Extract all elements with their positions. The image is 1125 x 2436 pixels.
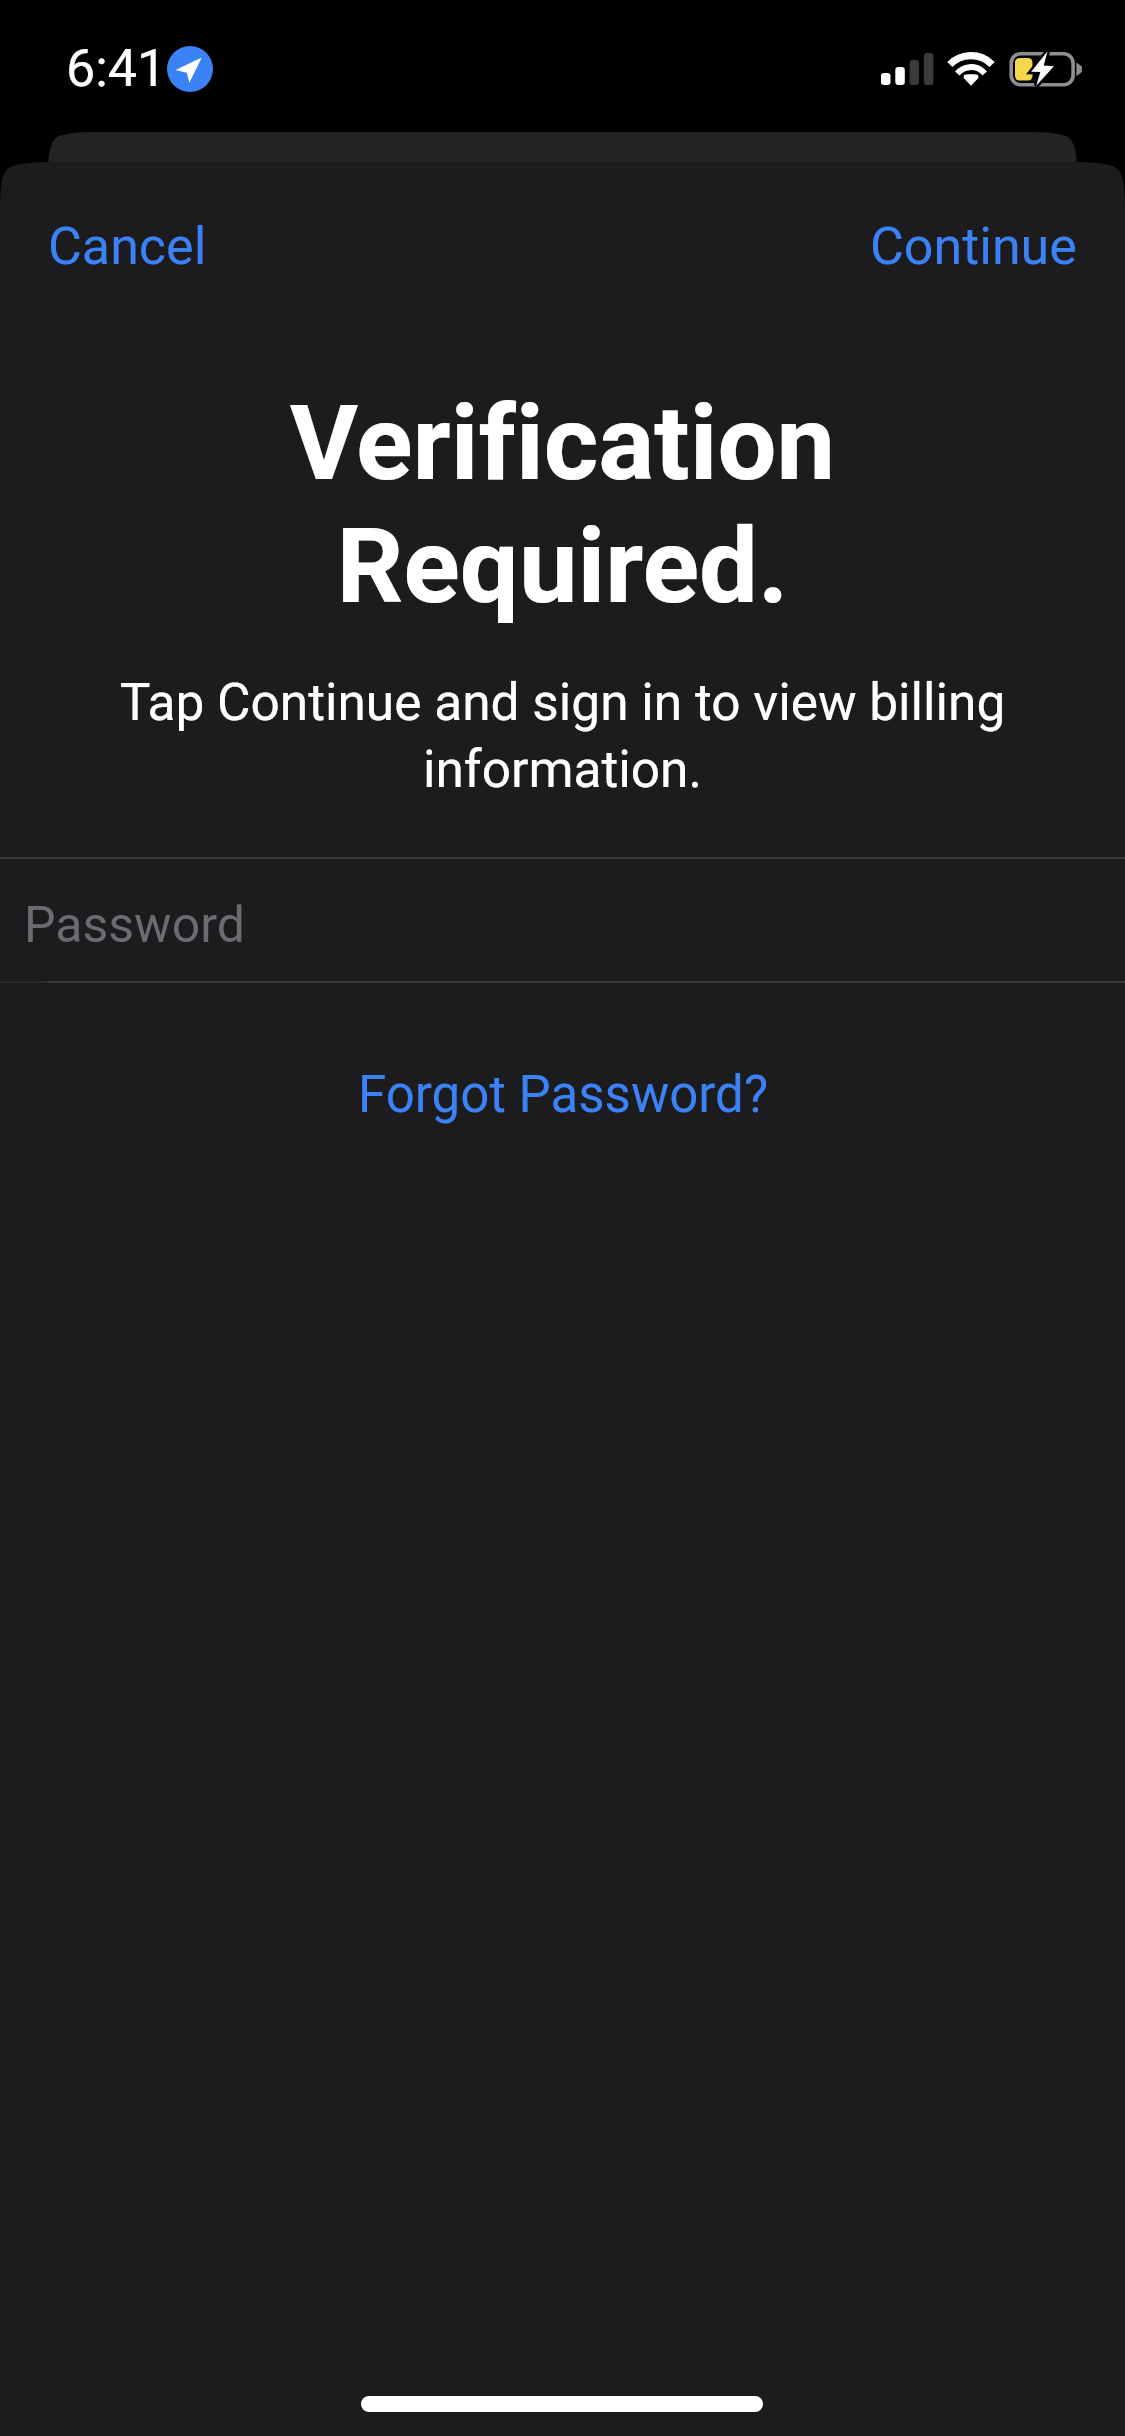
staticText: Continue (870, 216, 1077, 277)
other: Cellular signal strength (881, 53, 933, 85)
staticText: Cancel (48, 216, 207, 277)
staticText: Password (24, 896, 245, 955)
other: Battery charging (1007, 49, 1085, 89)
staticText: Forgot Password? (358, 1065, 768, 1125)
button[interactable]: Password (0, 857, 1125, 983)
staticText: Verification Required. (100, 382, 1025, 628)
other: Wi-Fi connected (946, 50, 996, 86)
other: Location services active (167, 46, 213, 92)
button[interactable]: Continue (840, 186, 1107, 307)
staticText: 6:41 (66, 38, 167, 99)
button[interactable]: Cancel (18, 186, 237, 307)
staticText: Tap Continue and sign in to view billing… (60, 672, 1065, 800)
button[interactable]: Forgot Password? (328, 1035, 798, 1155)
